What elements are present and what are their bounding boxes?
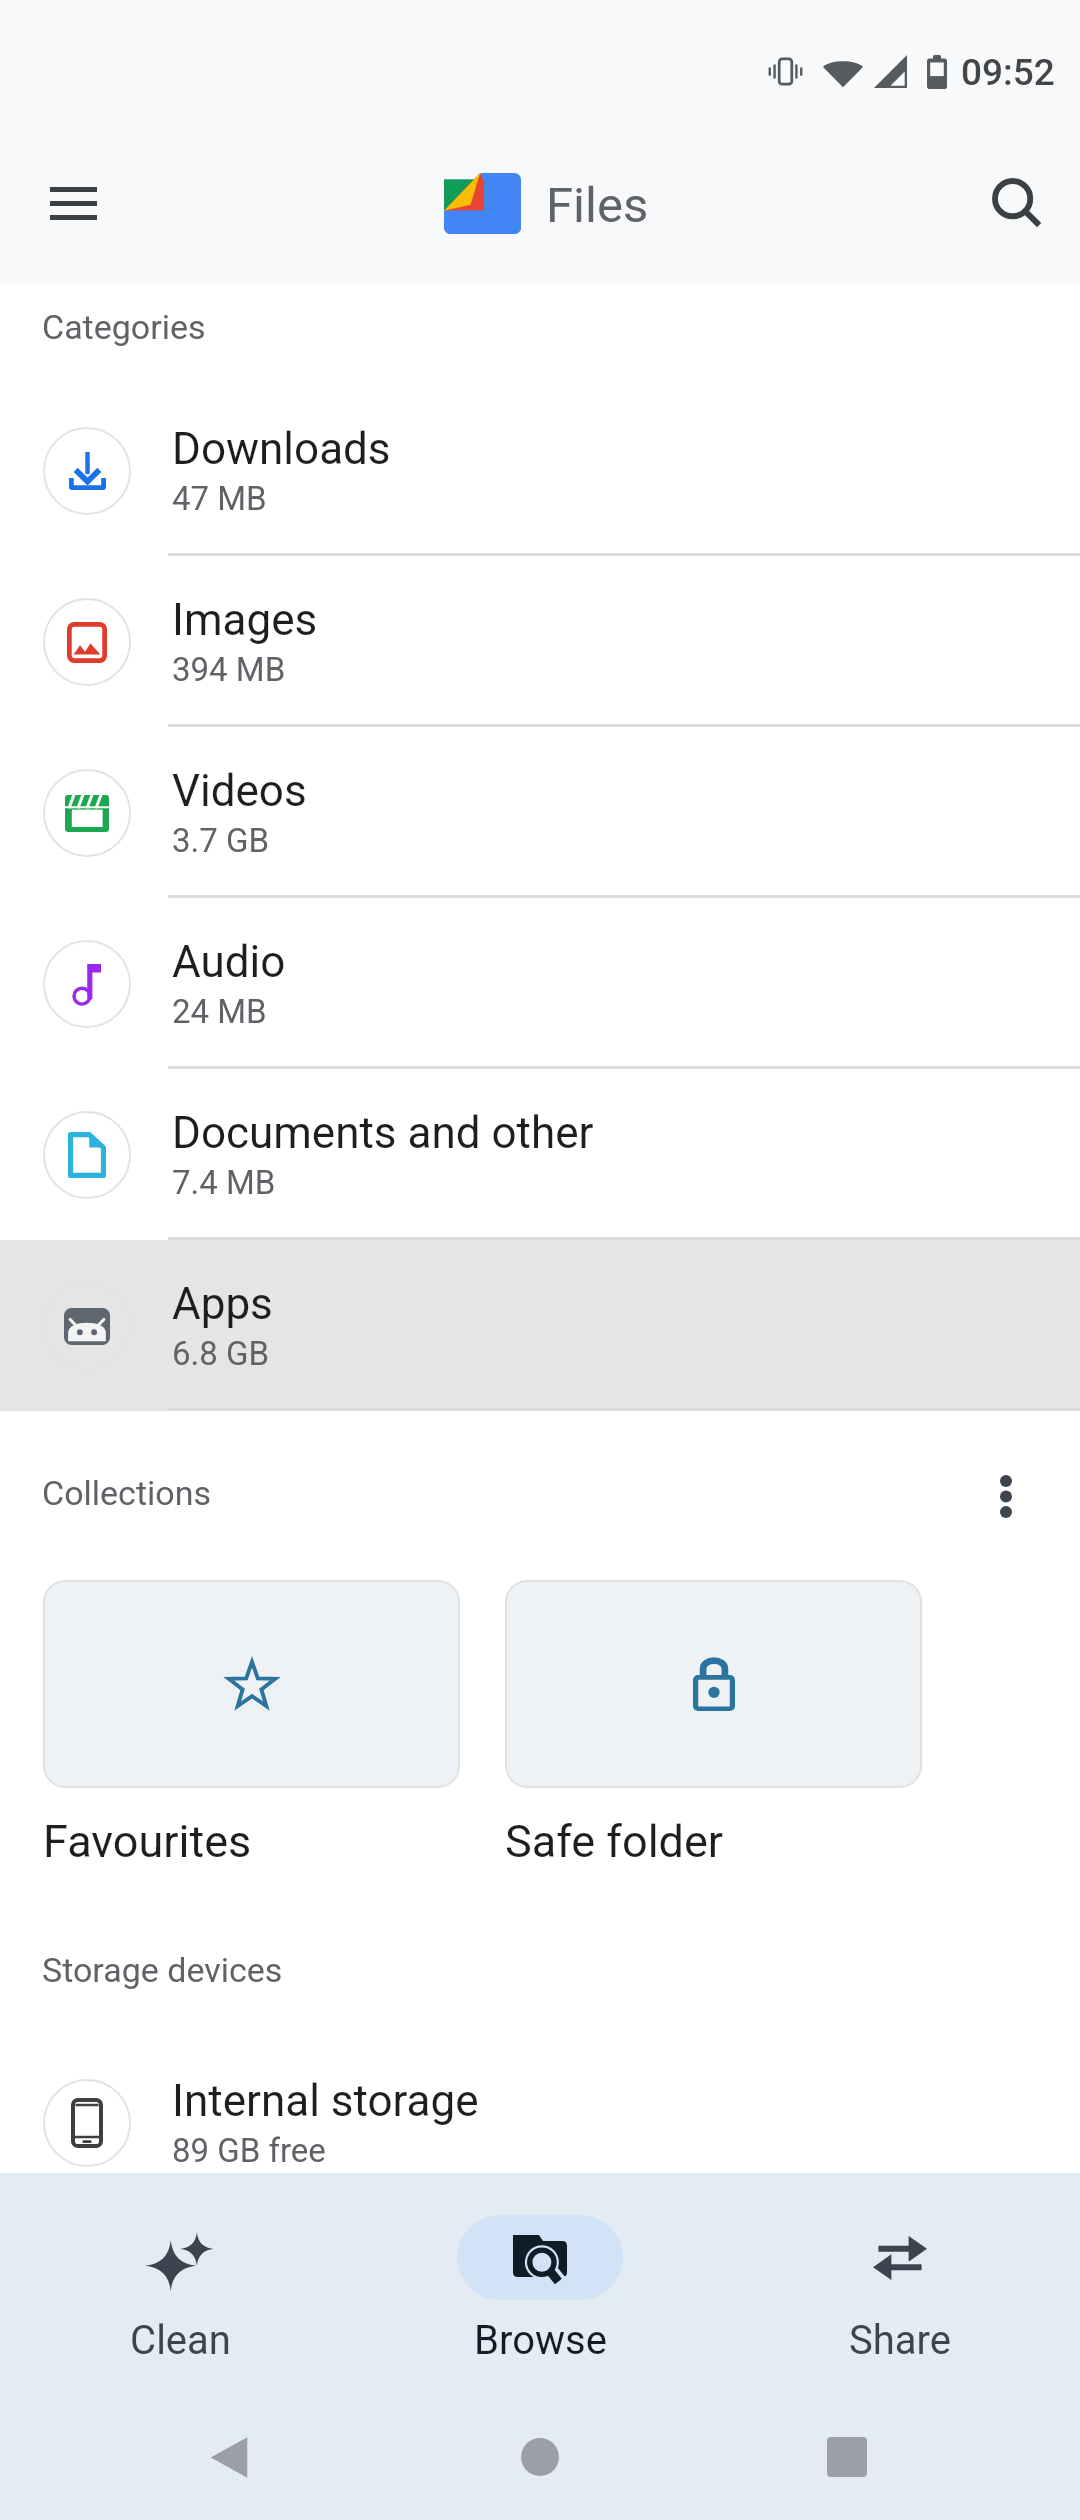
staticText: 89 GB free xyxy=(172,2131,326,2170)
staticText: Documents and other xyxy=(172,1107,594,1159)
button[interactable]: Images xyxy=(0,556,1080,727)
staticText: Safe folder xyxy=(505,1815,724,1868)
button[interactable]: Clean xyxy=(0,2173,360,2364)
button[interactable]: Favourites xyxy=(43,1580,460,1788)
staticText: 3.7 GB xyxy=(172,821,270,860)
staticText: Browse xyxy=(474,2317,607,2364)
button[interactable]: Apps xyxy=(0,1240,1080,1411)
staticText: Files xyxy=(546,177,649,234)
staticText: 7.4 MB xyxy=(172,1163,276,1202)
button[interactable]: Safe folder xyxy=(505,1580,922,1788)
button[interactable]: Audio xyxy=(0,898,1080,1069)
button[interactable]: Share xyxy=(720,2173,1080,2364)
button[interactable]: Search xyxy=(966,152,1070,256)
button[interactable]: Menu xyxy=(21,151,125,255)
staticText: 6.8 GB xyxy=(172,1334,270,1373)
staticText: Categories xyxy=(42,307,206,347)
staticText: Audio xyxy=(172,936,286,988)
staticText: 09:52 xyxy=(961,51,1055,94)
button[interactable]: Downloads xyxy=(0,385,1080,556)
button[interactable]: Back xyxy=(174,2402,284,2512)
staticText: 394 MB xyxy=(172,650,286,689)
staticText: Clean xyxy=(130,2317,231,2364)
button[interactable]: Internal storage xyxy=(0,2037,1080,2208)
staticText: Collections xyxy=(42,1473,211,1513)
staticText: Apps xyxy=(172,1278,273,1330)
staticText: Images xyxy=(172,594,318,646)
staticText: Share xyxy=(849,2317,951,2364)
button[interactable]: Videos xyxy=(0,727,1080,898)
staticText: Storage devices xyxy=(42,1950,283,1990)
button[interactable]: Recents xyxy=(792,2402,902,2512)
button[interactable]: Browse xyxy=(360,2173,720,2364)
staticText: Internal storage xyxy=(172,2075,479,2127)
staticText: 24 MB xyxy=(172,992,267,1031)
staticText: Videos xyxy=(172,765,307,817)
button[interactable]: Documents and other xyxy=(0,1069,1080,1240)
staticText: 47 MB xyxy=(172,479,267,518)
button[interactable]: Home xyxy=(485,2402,595,2512)
staticText: Favourites xyxy=(43,1815,252,1868)
staticText: Downloads xyxy=(172,423,391,475)
button[interactable]: More options xyxy=(958,1448,1054,1544)
